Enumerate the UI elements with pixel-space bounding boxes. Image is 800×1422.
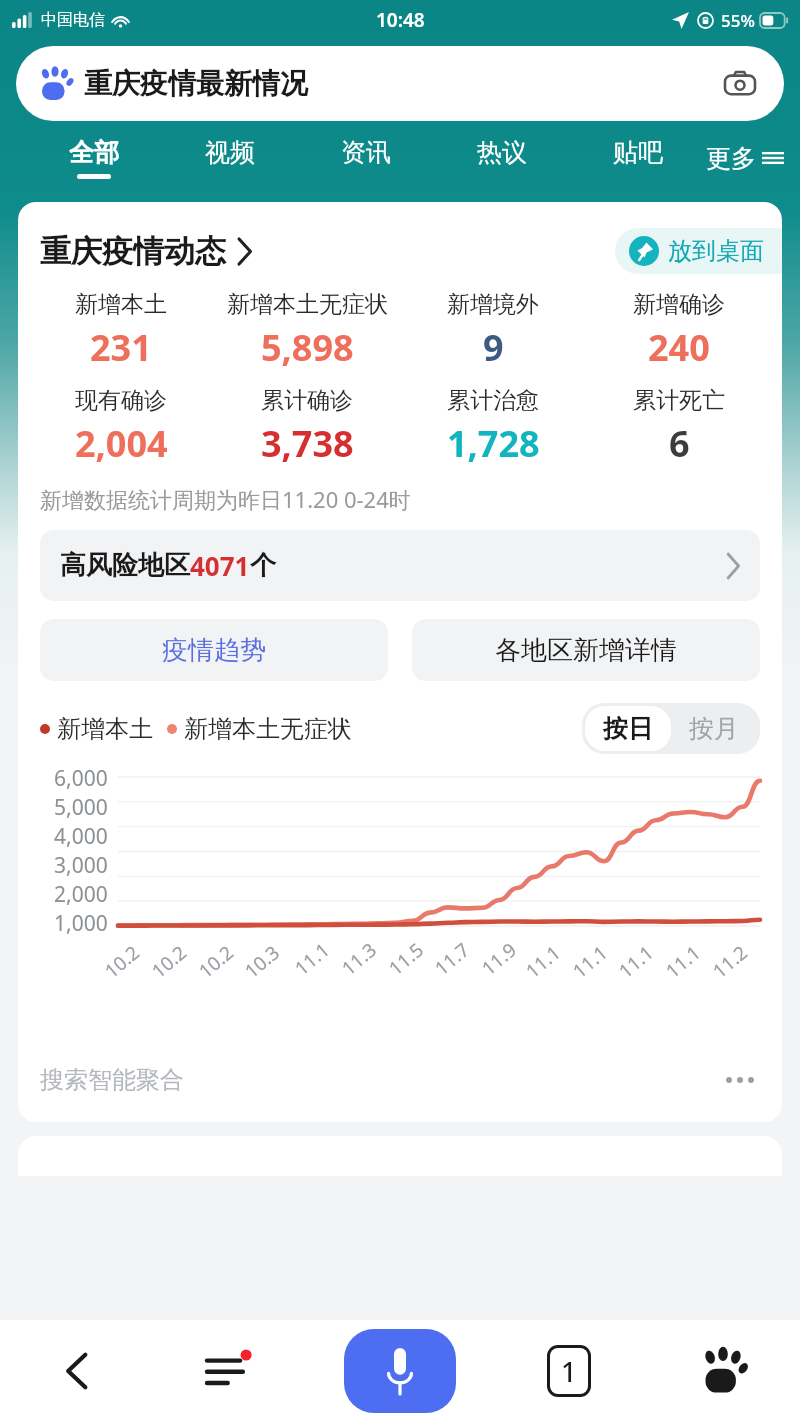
staticText: 55% xyxy=(721,9,755,32)
staticText: 5,898 xyxy=(261,323,354,372)
staticText: 重庆疫情动态 xyxy=(40,232,226,271)
staticText: 搜索智能聚合 xyxy=(40,1065,184,1095)
staticText: 11.7 xyxy=(429,937,475,981)
staticText: 10.26 xyxy=(146,934,198,984)
staticText: 新增本土 xyxy=(57,714,153,744)
staticText: 11.3 xyxy=(336,937,382,981)
button[interactable]: Back xyxy=(0,1320,153,1422)
staticText: 新增境外 xyxy=(447,290,539,319)
staticText: 10.24 xyxy=(99,934,151,984)
staticText: 240 xyxy=(648,323,710,372)
staticText: 5,000 xyxy=(54,793,108,822)
button[interactable]: 全部 xyxy=(26,127,162,189)
staticText: 11.13 xyxy=(567,934,619,984)
staticText: 3,000 xyxy=(54,851,108,880)
staticText: 按月 xyxy=(689,713,739,744)
staticText: 高风险地区 xyxy=(60,549,190,582)
staticText: 重庆疫情最新情况 xyxy=(84,66,308,101)
button[interactable]: 疫情趋势 xyxy=(40,619,388,681)
button[interactable]: Menu xyxy=(153,1320,307,1422)
staticText: 1 xyxy=(561,1353,577,1390)
button[interactable]: 新增境外 xyxy=(400,290,586,372)
staticText: 放到桌面 xyxy=(668,236,764,266)
button[interactable]: Camera search xyxy=(718,62,762,106)
staticText: 10.28 xyxy=(193,934,245,984)
staticText: 2,000 xyxy=(54,880,108,909)
button[interactable]: Tabs xyxy=(492,1320,646,1422)
staticText: 6,000 xyxy=(54,764,108,793)
button[interactable]: 按日 xyxy=(585,706,671,751)
button[interactable]: 各地区新增详情 xyxy=(412,619,760,681)
staticText: 11.20 xyxy=(707,934,759,984)
staticText: 3,738 xyxy=(261,419,354,468)
button[interactable]: Baidu home xyxy=(646,1320,800,1422)
staticText: 累计治愈 xyxy=(447,386,539,415)
staticText: 更多 xyxy=(706,143,756,174)
staticText: 231 xyxy=(90,323,152,372)
staticText: 热议 xyxy=(477,137,527,168)
staticText: 6 xyxy=(669,419,690,468)
button[interactable]: 贴吧 xyxy=(570,127,706,189)
staticText: 9 xyxy=(483,323,504,372)
staticText: 各地区新增详情 xyxy=(495,634,677,667)
staticText: 中国电信 xyxy=(41,10,105,30)
staticText: 按日 xyxy=(603,713,653,744)
staticText: 疫情趋势 xyxy=(162,634,266,667)
button[interactable]: Voice search xyxy=(344,1329,456,1413)
staticText: 累计确诊 xyxy=(261,386,353,415)
button[interactable]: 热议 xyxy=(434,127,570,189)
button[interactable]: 累计死亡 xyxy=(586,386,772,468)
button[interactable]: 高风险地区 xyxy=(40,530,760,601)
button[interactable]: 重庆疫情动态 xyxy=(40,232,253,271)
staticText: 全部 xyxy=(69,137,119,168)
button[interactable]: 视频 xyxy=(162,127,298,189)
button[interactable]: 新增本土无症状 xyxy=(214,290,400,372)
staticText: 11.15 xyxy=(613,934,665,984)
staticText: 新增数据统计周期为昨日11.20 0-24时 xyxy=(40,484,411,514)
staticText: 新增确诊 xyxy=(633,290,725,319)
staticText: 11.9 xyxy=(476,937,522,981)
staticText: 累计死亡 xyxy=(633,386,725,415)
staticText: 资讯 xyxy=(341,137,391,168)
staticText: 10.30 xyxy=(239,934,291,984)
staticText: 11.11 xyxy=(520,934,572,984)
staticText: 新增本土 xyxy=(75,290,167,319)
staticText: 10:48 xyxy=(376,7,425,33)
button[interactable]: 重庆疫情最新情况 xyxy=(16,46,784,121)
button[interactable]: 按月 xyxy=(671,706,757,751)
button[interactable]: More options xyxy=(720,1060,760,1100)
staticText: 11.5 xyxy=(383,937,429,981)
staticText: 1,000 xyxy=(54,909,108,938)
button[interactable]: 更多 xyxy=(706,127,784,189)
staticText: 1,728 xyxy=(447,419,540,468)
button[interactable]: 放到桌面 xyxy=(629,236,764,266)
button[interactable]: 累计治愈 xyxy=(400,386,586,468)
button[interactable]: 资讯 xyxy=(298,127,434,189)
button[interactable]: 累计确诊 xyxy=(214,386,400,468)
button[interactable]: 新增本土 xyxy=(28,290,214,372)
staticText: 现有确诊 xyxy=(75,386,167,415)
staticText: 个 xyxy=(250,549,276,582)
staticText: 11.1 xyxy=(289,937,335,981)
staticText: 4,000 xyxy=(54,822,108,851)
staticText: 新增本土无症状 xyxy=(227,290,388,319)
staticText: 11.17 xyxy=(660,934,712,984)
staticText: 新增本土无症状 xyxy=(184,714,352,744)
staticText: 4071 xyxy=(190,548,250,583)
staticText: 贴吧 xyxy=(613,137,663,168)
button[interactable]: 现有确诊 xyxy=(28,386,214,468)
staticText: 2,004 xyxy=(75,419,168,468)
staticText: 视频 xyxy=(205,137,255,168)
button[interactable]: 新增确诊 xyxy=(586,290,772,372)
